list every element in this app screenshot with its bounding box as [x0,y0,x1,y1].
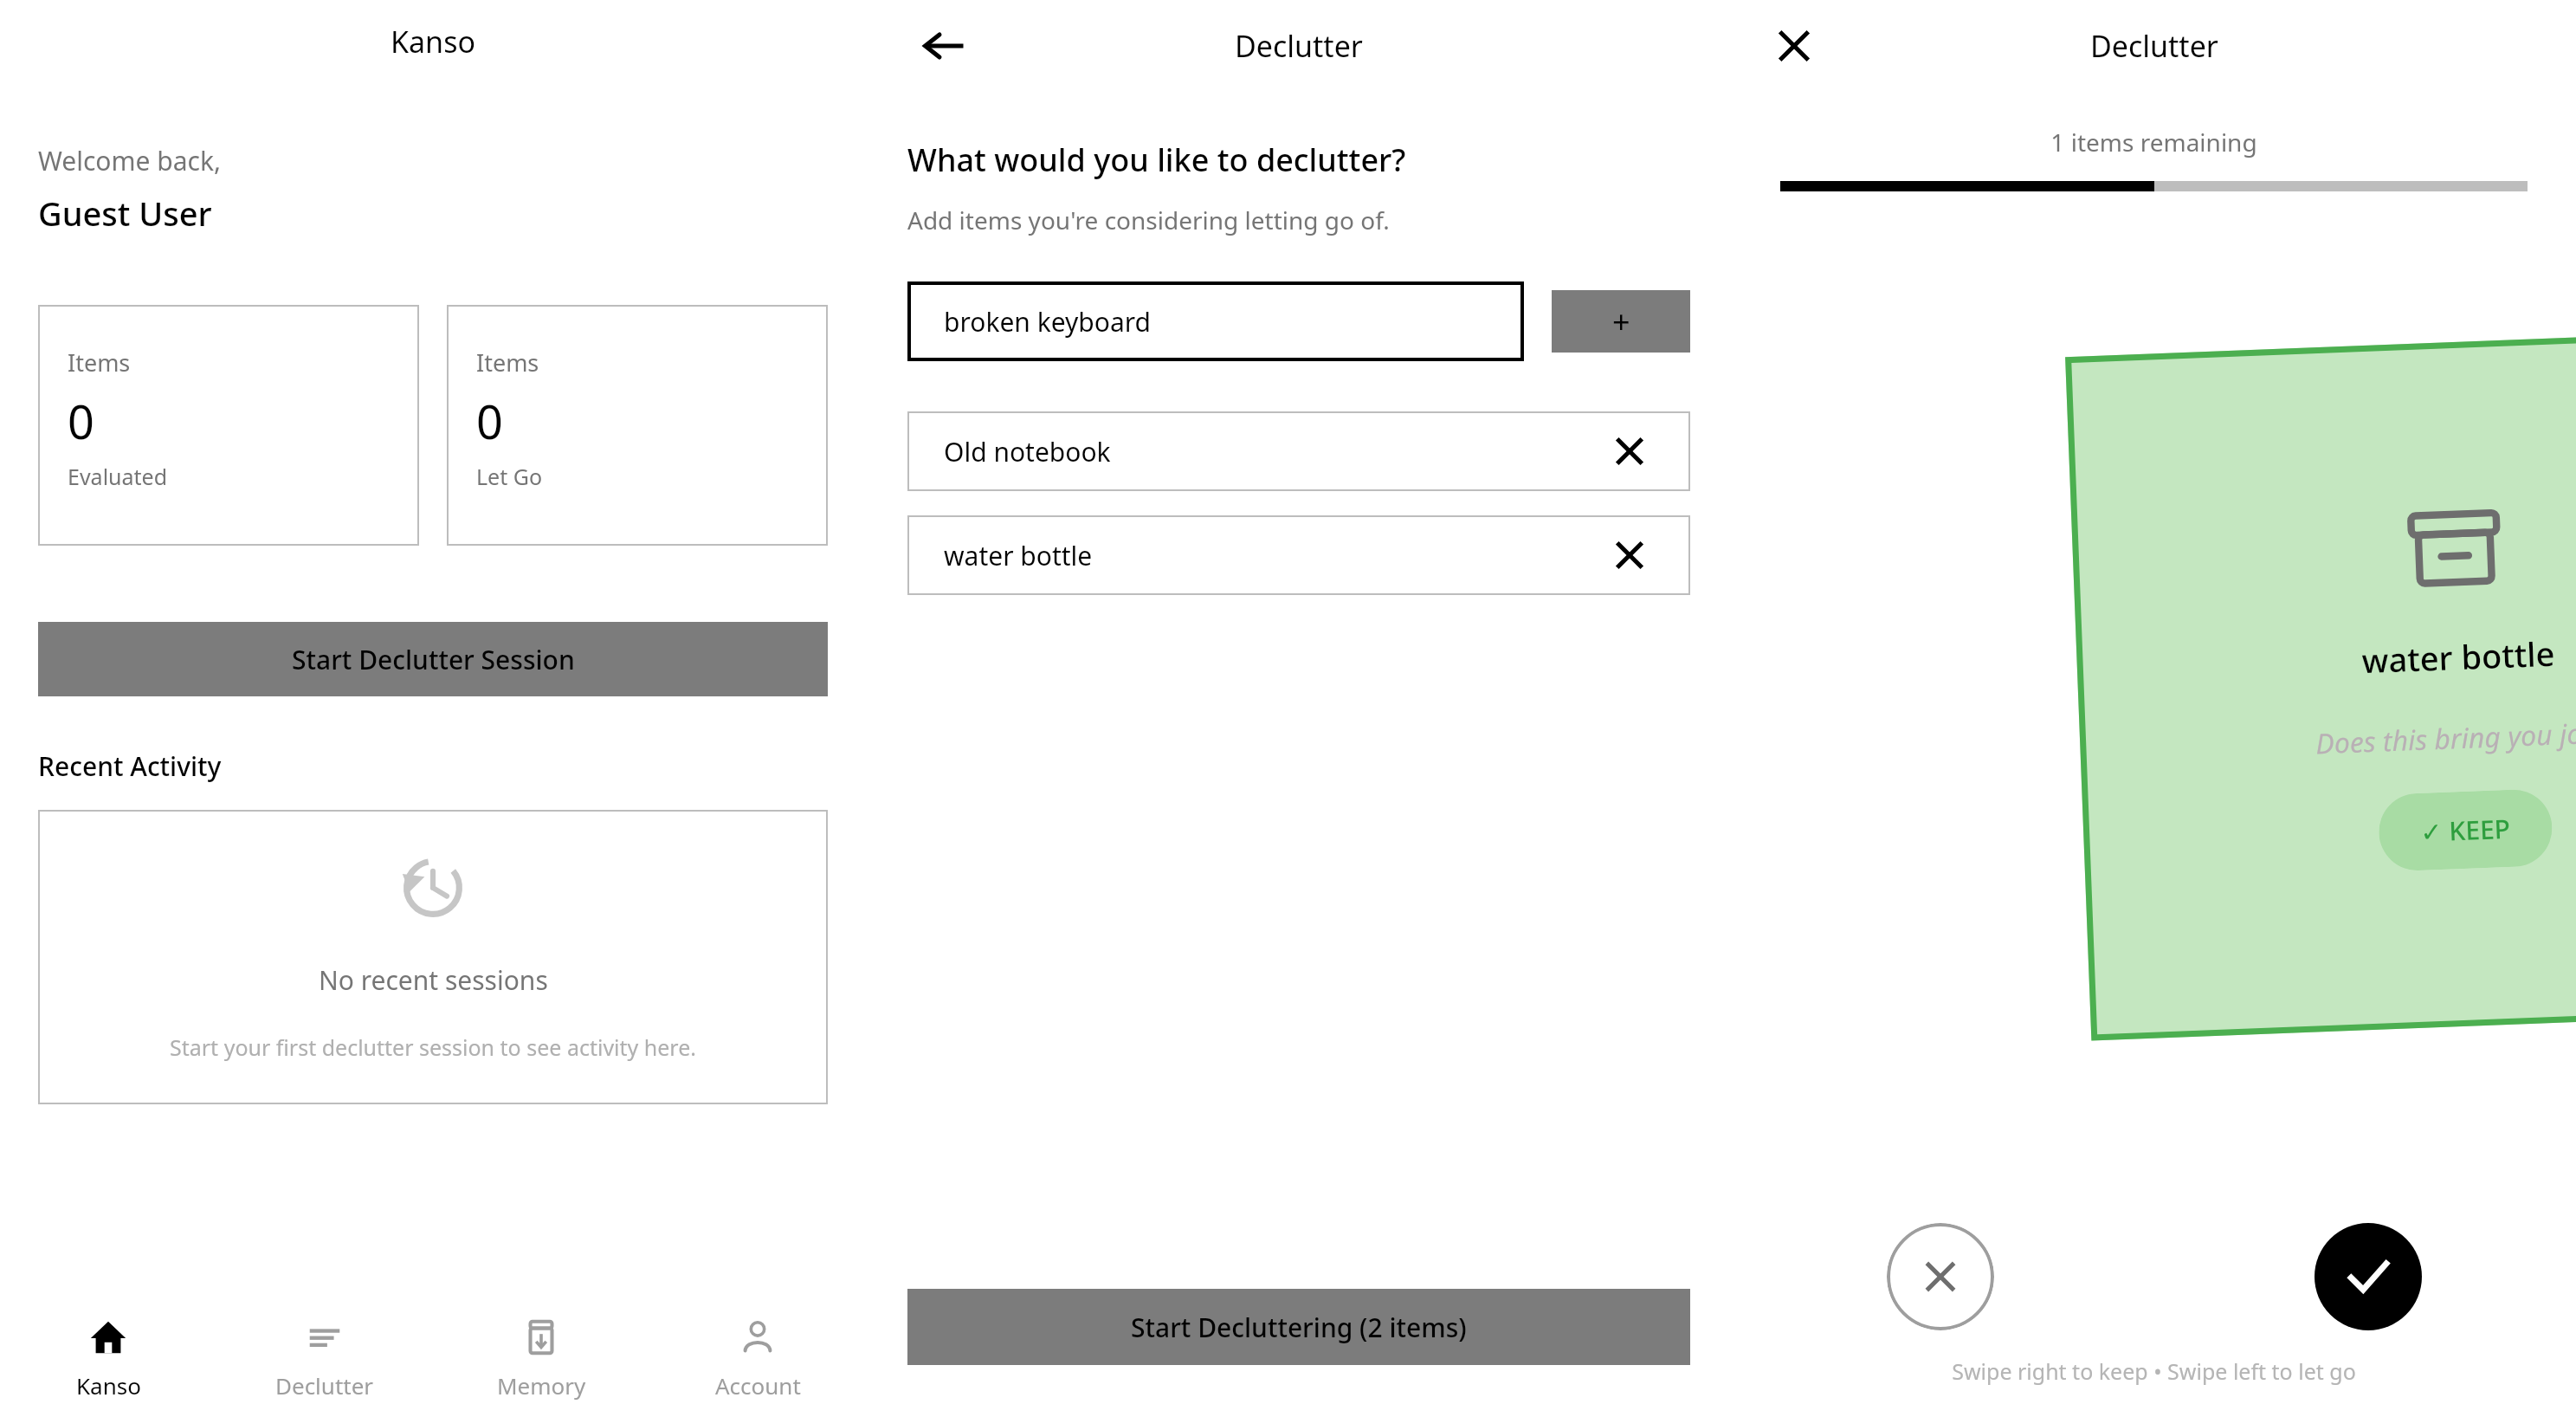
button[interactable]: Remove Old notebook [1605,427,1654,476]
button[interactable]: Account [649,1299,866,1417]
staticText: Items [68,346,131,379]
button[interactable]: Items [38,305,419,546]
button[interactable]: Add item [1552,290,1690,353]
button[interactable]: Start Decluttering (2 items) [907,1289,1690,1365]
button[interactable]: Items [447,305,828,546]
button[interactable]: Kanso [0,1299,216,1417]
staticText: Memory [497,1370,586,1401]
button[interactable]: Keep [2315,1223,2422,1330]
staticText: + [1612,301,1630,343]
staticText: Declutter [1235,26,1363,66]
staticText: Start Decluttering (2 items) [1131,1310,1467,1345]
staticText: 0 [476,389,503,453]
staticText: broken keyboard [944,304,1151,340]
staticText: Kanso [76,1370,141,1401]
staticText: Does this bring you joy? [2315,713,2576,763]
button[interactable]: Back [918,20,970,72]
staticText: Evaluated [68,462,168,491]
staticText: Old notebook [944,434,1605,469]
staticText: water bottle [2361,630,2556,683]
staticText: Start Declutter Session [292,642,575,677]
button[interactable]: broken keyboard [907,281,1524,361]
staticText: Guest User [38,191,212,236]
staticText: Account [715,1370,801,1401]
staticText: Recent Activity [38,748,222,784]
button[interactable]: water bottle [907,515,1690,595]
staticText: Start your first declutter session to se… [170,1032,696,1062]
staticText: Declutter [275,1370,374,1401]
button[interactable]: water bottle [2065,336,2576,1041]
staticText: Items [476,346,539,379]
staticText: Add items you're considering letting go … [907,204,1390,236]
staticText: Let Go [476,462,543,491]
staticText: Kanso [391,22,475,61]
button[interactable]: Declutter [216,1299,433,1417]
staticText: What would you like to declutter? [907,139,1406,181]
staticText: Welcome back, [38,143,222,178]
staticText: 1 items remaining [1732,126,2576,159]
button[interactable]: Start Declutter Session [38,622,828,696]
staticText: ✓ KEEP [2420,811,2511,850]
button[interactable]: Close [1768,20,1820,72]
staticText: water bottle [944,538,1605,573]
button[interactable]: Let go [1887,1223,1994,1330]
staticText: 0 [68,389,94,453]
button[interactable]: Memory [433,1299,649,1417]
staticText: Swipe right to keep • Swipe left to let … [1732,1356,2576,1386]
staticText: No recent sessions [319,962,548,998]
button[interactable]: Old notebook [907,411,1690,491]
staticText: Declutter [2090,26,2218,66]
button[interactable]: Remove water bottle [1605,531,1654,579]
